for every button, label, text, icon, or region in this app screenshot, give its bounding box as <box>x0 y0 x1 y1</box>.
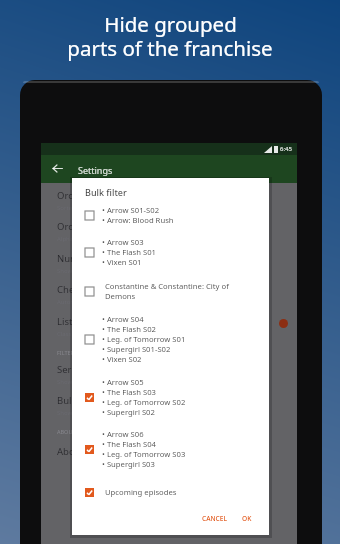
staticText: Order of episodes <box>57 189 137 202</box>
staticText: Show all <box>57 378 81 386</box>
staticText: OK <box>242 514 252 523</box>
button[interactable]: Order of episodes <box>41 187 297 218</box>
staticText: parts of the franchise <box>67 34 273 62</box>
staticText: Classic <box>57 330 76 338</box>
staticText: About <box>57 445 84 458</box>
staticText: • Arrow S03 <box>102 237 144 247</box>
staticText: FILTERS <box>57 349 78 356</box>
staticText: Alphabetically <box>57 235 97 243</box>
button[interactable]: OK <box>237 509 257 528</box>
staticText: 6:45 <box>280 145 292 153</box>
button[interactable]: Bulk filter <box>41 392 297 423</box>
button[interactable]: List style <box>41 313 297 344</box>
staticText: • Vixen S02 <box>102 354 142 364</box>
staticText: Check for updates <box>57 283 138 296</box>
staticText: Show all <box>57 409 81 417</box>
button[interactable]: Selected <box>85 445 94 454</box>
staticText: • The Flash S03 <box>102 387 156 397</box>
staticText: • Supergirl S01-S02 <box>102 344 171 354</box>
staticText: • Arrow S01-S02 <box>102 205 160 215</box>
button[interactable]: Selected <box>85 393 94 402</box>
button[interactable]: Selected <box>85 488 94 497</box>
staticText: • Arrow S04 <box>102 314 144 324</box>
staticText: Upcoming episodes <box>105 487 177 497</box>
staticText: • Arrow S05 <box>102 377 144 387</box>
button[interactable]: Order of series <box>41 218 297 249</box>
staticText: • Arrow: Blood Rush <box>102 215 174 225</box>
button[interactable]: Number of episodes <box>41 250 297 281</box>
staticText: Settings <box>78 164 113 176</box>
staticText: • Leg. of Tomorrow S01 <box>102 334 186 344</box>
button[interactable]: Not selected <box>85 211 94 220</box>
staticText: Series filter <box>57 363 108 376</box>
button[interactable]: Back <box>44 155 70 181</box>
staticText: Demons <box>105 291 136 301</box>
staticText: • Arrow S06 <box>102 429 144 439</box>
staticText: • Supergirl S02 <box>102 407 155 417</box>
staticText: Order of series <box>57 220 124 233</box>
button[interactable]: Check for updates <box>41 281 297 312</box>
staticText: Constantine & Constantine: City of <box>105 281 229 291</box>
staticText: List style <box>57 315 96 328</box>
staticText: • The Flash S04 <box>102 439 156 449</box>
button[interactable]: Not selected <box>85 287 94 296</box>
staticText: • The Flash S01 <box>102 247 156 257</box>
staticText: Bulk filter <box>85 186 127 198</box>
staticText: Number of episodes <box>57 252 148 265</box>
button[interactable]: CANCEL <box>197 509 233 528</box>
staticText: • Supergirl S03 <box>102 459 155 469</box>
staticText: Automatically <box>57 298 96 306</box>
staticText: • The Flash S02 <box>102 324 156 334</box>
button[interactable]: Not selected <box>85 335 94 344</box>
button[interactable]: Not selected <box>85 248 94 257</box>
staticText: Show all <box>57 267 81 275</box>
button[interactable]: About <box>41 443 297 474</box>
staticText: • Leg. of Tomorrow S03 <box>102 449 186 459</box>
staticText: Bulk filter <box>57 394 100 407</box>
button[interactable]: Series filter <box>41 361 297 392</box>
staticText: Hide grouped <box>104 10 237 38</box>
staticText: CANCEL <box>202 514 228 523</box>
staticText: • Vixen S01 <box>102 257 142 267</box>
staticText: ABOUT <box>57 428 76 435</box>
staticText: Sorted by season <box>57 204 106 212</box>
staticText: • Leg. of Tomorrow S02 <box>102 397 186 407</box>
